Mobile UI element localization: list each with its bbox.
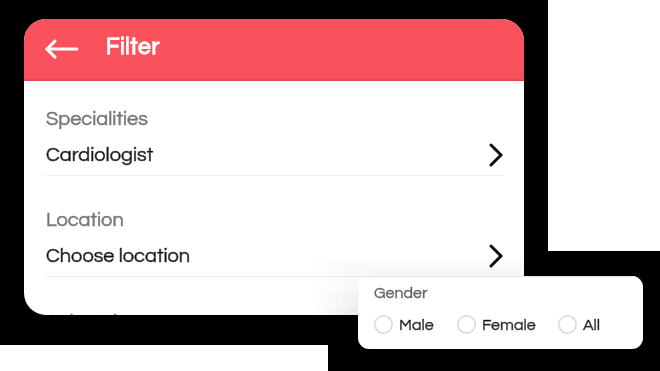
staticText: Female xyxy=(482,317,536,333)
button[interactable]: Location xyxy=(24,210,524,311)
button[interactable]: Specialities xyxy=(24,109,524,210)
staticText: Filter xyxy=(106,35,160,59)
staticText: All xyxy=(583,317,601,333)
button[interactable]: Male xyxy=(374,315,434,334)
button[interactable]: Female xyxy=(457,315,536,334)
staticText: Female xyxy=(482,317,536,333)
staticText: All xyxy=(583,317,601,333)
staticText: Cardiologist xyxy=(46,145,154,166)
staticText: Gender xyxy=(374,285,428,301)
staticText: Male xyxy=(399,317,434,333)
staticText: Male xyxy=(399,317,434,333)
staticText: Gender xyxy=(374,285,428,301)
staticText: Specialities xyxy=(46,109,148,130)
staticText: Cardiologist xyxy=(46,145,154,166)
staticText: Location xyxy=(46,210,124,231)
staticText: Select time xyxy=(46,312,146,315)
staticText: Specialities xyxy=(46,109,148,130)
staticText: Select time xyxy=(46,312,146,315)
staticText: Location xyxy=(46,210,124,231)
button[interactable]: Select time xyxy=(24,312,524,315)
button[interactable]: All xyxy=(558,315,601,334)
staticText: Choose location xyxy=(46,246,191,267)
button[interactable]: Back xyxy=(31,28,75,72)
staticText: Choose location xyxy=(46,246,191,267)
